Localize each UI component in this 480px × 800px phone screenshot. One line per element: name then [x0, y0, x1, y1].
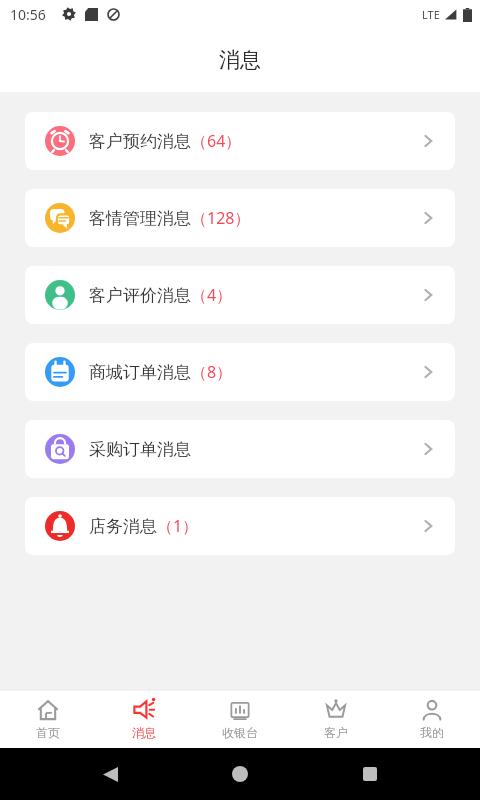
button[interactable]: 消息 — [96, 690, 192, 748]
staticText: 消息 — [132, 725, 156, 740]
button[interactable]: Back — [90, 754, 130, 794]
button[interactable]: 客户 — [288, 690, 384, 748]
button[interactable]: 收银台 — [192, 690, 288, 748]
button[interactable]: 客户预约消息 — [25, 112, 455, 170]
staticText: 店务消息 — [89, 516, 157, 537]
button[interactable]: 商城订单消息 — [25, 343, 455, 401]
staticText: 首页 — [36, 725, 60, 740]
staticText: （64） — [191, 130, 242, 152]
staticText: 客情管理消息 — [89, 208, 191, 229]
staticText: （4） — [191, 284, 233, 306]
button[interactable]: 我的 — [384, 690, 480, 748]
staticText: 商城订单消息 — [89, 362, 191, 383]
staticText: 消息 — [219, 47, 261, 73]
button[interactable]: 首页 — [0, 690, 96, 748]
staticText: （128） — [191, 207, 251, 229]
staticText: 我的 — [420, 725, 444, 740]
staticText: 客户评价消息 — [89, 285, 191, 306]
staticText: LTE — [422, 7, 440, 22]
staticText: （1） — [157, 515, 199, 537]
button[interactable]: 店务消息 — [25, 497, 455, 555]
button[interactable]: Home — [220, 754, 260, 794]
staticText: （8） — [191, 361, 233, 383]
staticText: 采购订单消息 — [89, 439, 191, 460]
staticText: 收银台 — [222, 725, 258, 740]
button[interactable]: 采购订单消息 — [25, 420, 455, 478]
staticText: 客户 — [324, 725, 348, 740]
staticText: 10:56 — [10, 5, 46, 24]
button[interactable]: 客情管理消息 — [25, 189, 455, 247]
button[interactable]: 客户评价消息 — [25, 266, 455, 324]
staticText: 客户预约消息 — [89, 131, 191, 152]
button[interactable]: Recents — [350, 754, 390, 794]
